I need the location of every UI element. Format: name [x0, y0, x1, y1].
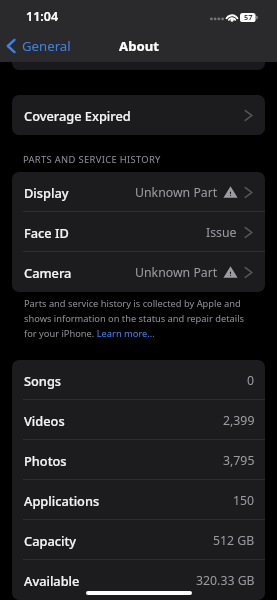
staticText: Parts and service history is collected b… — [24, 297, 253, 339]
staticText: Unknown Part — [135, 184, 218, 201]
staticText: 320.33 GB — [196, 572, 255, 589]
staticText: About — [119, 37, 159, 55]
button[interactable]: Camera — [12, 252, 265, 292]
staticText: 2,399 — [223, 412, 255, 429]
staticText: Camera — [24, 264, 72, 281]
staticText: PARTS AND SERVICE HISTORY — [23, 153, 161, 166]
button[interactable]: Face ID — [12, 212, 265, 252]
button[interactable]: Available — [12, 560, 265, 600]
button[interactable]: Videos — [12, 400, 265, 440]
staticText: Videos — [24, 412, 65, 429]
staticText: Available — [24, 572, 80, 589]
button[interactable]: Photos — [12, 440, 265, 480]
staticText: Photos — [24, 452, 67, 469]
staticText: 11:04 — [26, 8, 59, 25]
button[interactable]: Coverage Expired — [12, 95, 265, 135]
staticText: Coverage Expired — [24, 107, 131, 124]
staticText: Issue — [206, 224, 237, 241]
staticText: Applications — [24, 492, 100, 509]
staticText: 3,795 — [223, 452, 255, 469]
staticText: 57 — [244, 12, 253, 22]
staticText: Face ID — [24, 224, 69, 241]
button[interactable]: Display — [12, 172, 265, 212]
staticText: General — [22, 37, 71, 55]
staticText: 512 GB — [213, 532, 255, 549]
staticText: Display — [24, 184, 69, 201]
button[interactable]: General — [5, 33, 72, 59]
button[interactable]: Applications — [12, 480, 265, 520]
button[interactable]: Capacity — [12, 520, 265, 560]
staticText: Unknown Part — [135, 264, 218, 281]
staticText: Songs — [24, 372, 62, 389]
staticText: 150 — [233, 492, 255, 509]
staticText: Capacity — [24, 532, 77, 549]
button[interactable]: Songs — [12, 360, 265, 400]
staticText: 0 — [247, 372, 255, 389]
